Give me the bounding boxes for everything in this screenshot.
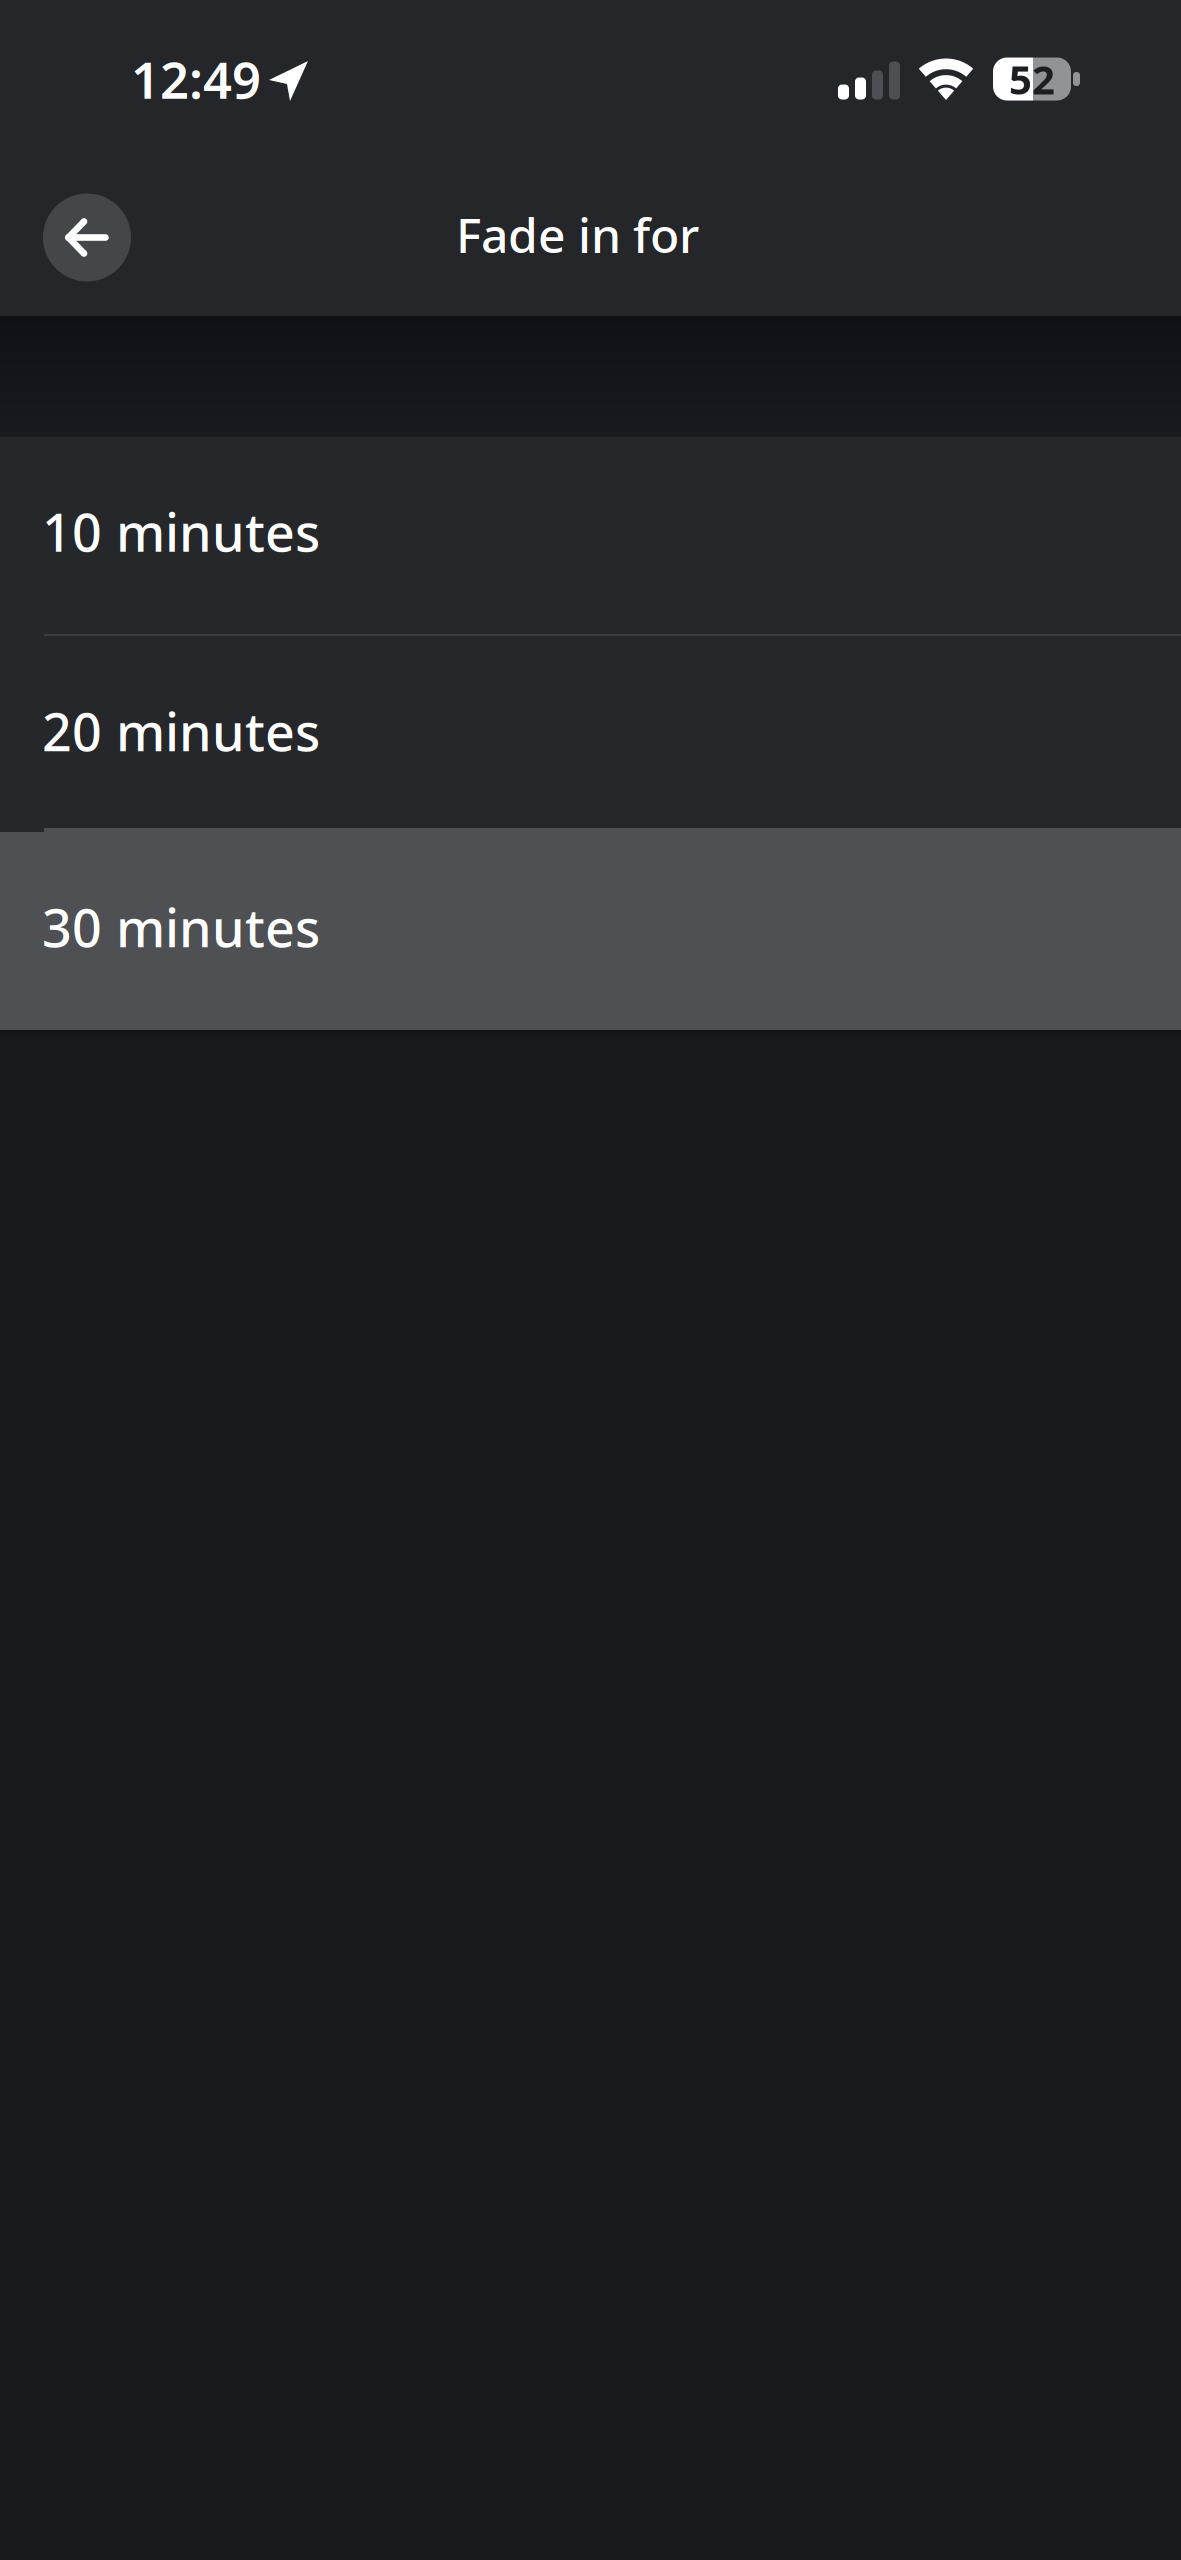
- button[interactable]: 30 minutes: [0, 832, 1181, 1030]
- staticText: 52: [1009, 52, 1055, 105]
- staticText: Fade in for: [456, 203, 699, 266]
- button[interactable]: Back: [43, 193, 131, 281]
- staticText: 30 minutes: [42, 892, 320, 962]
- staticText: 20 minutes: [42, 696, 320, 766]
- button[interactable]: 10 minutes: [0, 437, 1181, 634]
- staticText: 12:49: [131, 45, 261, 113]
- staticText: 10 minutes: [42, 497, 320, 566]
- button[interactable]: 20 minutes: [0, 636, 1181, 828]
